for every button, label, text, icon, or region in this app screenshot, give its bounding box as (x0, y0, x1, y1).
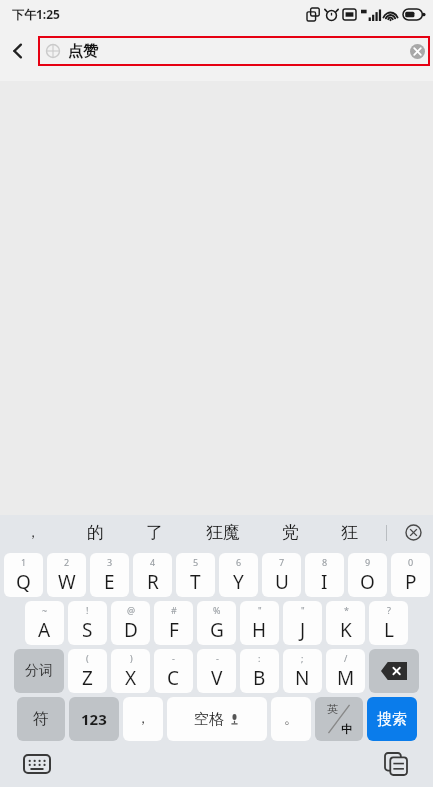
button[interactable]: - (154, 649, 193, 693)
button[interactable]: 搜索 (367, 697, 417, 741)
staticText: F (169, 617, 179, 643)
staticText: P (405, 569, 417, 595)
button[interactable]: % (197, 601, 236, 645)
button[interactable]: - (197, 649, 236, 693)
staticText: C (167, 665, 180, 691)
staticText: A (38, 617, 51, 643)
button[interactable]: Clipboard (379, 747, 413, 781)
staticText: S (82, 617, 93, 643)
staticText: - (216, 652, 219, 664)
button[interactable]: 狂 (320, 515, 379, 550)
button[interactable]: 8 (305, 553, 344, 597)
button[interactable]: 空格 (167, 697, 267, 741)
button[interactable]: : (240, 649, 279, 693)
staticText: 狂魔 (206, 522, 240, 543)
button[interactable]: 的 (66, 515, 125, 550)
staticText: K (340, 617, 352, 643)
staticText: T (190, 569, 201, 595)
staticText: 狂 (341, 522, 358, 543)
staticText: Z (82, 665, 93, 691)
button[interactable]: " (240, 601, 279, 645)
button[interactable] (369, 649, 419, 693)
staticText: 的 (87, 522, 104, 543)
button[interactable]: 6 (219, 553, 258, 597)
staticText: O (360, 569, 375, 595)
button[interactable]: 5 (176, 553, 215, 597)
staticText: 2 (64, 556, 70, 568)
button[interactable]: 分词 (14, 649, 64, 693)
staticText: 英 (327, 702, 338, 716)
staticText: ( (86, 652, 89, 664)
button[interactable]: / (326, 649, 365, 693)
button[interactable]: @ (111, 601, 150, 645)
staticText: ) (130, 652, 133, 664)
button[interactable]: 。 (271, 697, 311, 741)
button[interactable]: 符 (17, 697, 65, 741)
button[interactable]: ， (0, 515, 66, 550)
staticText: 3 (107, 556, 113, 568)
button[interactable]: ~ (25, 601, 64, 645)
button[interactable]: 了 (125, 515, 184, 550)
staticText: X (125, 665, 137, 691)
staticText: L (384, 617, 394, 643)
button[interactable]: # (154, 601, 193, 645)
button[interactable]: Clear (404, 38, 430, 64)
staticText: 下午1:25 (12, 6, 60, 22)
staticText: * (344, 604, 349, 616)
button[interactable]: 7 (262, 553, 301, 597)
staticText: 4 (150, 556, 156, 568)
staticText: N (295, 665, 310, 691)
button[interactable]: Back (0, 33, 36, 69)
button[interactable]: 党 (261, 515, 320, 550)
staticText: 5 (193, 556, 199, 568)
button[interactable]: ) (111, 649, 150, 693)
staticText: / (344, 652, 348, 664)
staticText: 符 (33, 709, 49, 729)
button[interactable]: 0 (391, 553, 430, 597)
staticText: Q (16, 569, 31, 595)
staticText: ! (86, 604, 89, 616)
staticText: 搜索 (377, 710, 407, 729)
staticText: 。 (284, 710, 298, 728)
staticText: V (211, 665, 223, 691)
staticText: # (171, 604, 177, 616)
staticText: ~ (42, 604, 48, 616)
staticText: E (104, 569, 115, 595)
button[interactable]: 2 (47, 553, 86, 597)
staticText: ， (136, 710, 150, 728)
button[interactable]: " (283, 601, 322, 645)
button[interactable]: Close candidates (393, 515, 433, 550)
button[interactable]: ? (369, 601, 408, 645)
staticText: 了 (146, 522, 163, 543)
button[interactable]: 123 (69, 697, 119, 741)
staticText: I (321, 569, 328, 595)
button[interactable]: 点赞 (38, 36, 430, 66)
button[interactable]: Switch keyboard (20, 747, 54, 781)
staticText: " (258, 604, 262, 616)
staticText: ， (26, 524, 40, 542)
staticText: ? (387, 604, 391, 616)
button[interactable]: 英 (315, 697, 363, 741)
staticText: U (275, 569, 289, 595)
button[interactable]: 4 (133, 553, 172, 597)
staticText: 7 (279, 556, 285, 568)
button[interactable]: 3 (90, 553, 129, 597)
button[interactable]: 9 (348, 553, 387, 597)
staticText: D (124, 617, 138, 643)
staticText: G (210, 617, 224, 643)
staticText: 点赞 (68, 42, 98, 61)
button[interactable]: * (326, 601, 365, 645)
button[interactable]: 狂魔 (184, 515, 261, 550)
staticText: : (258, 652, 261, 664)
button[interactable]: ; (283, 649, 322, 693)
button[interactable]: ( (68, 649, 107, 693)
button[interactable]: ， (123, 697, 163, 741)
button[interactable]: ! (68, 601, 107, 645)
staticText: 中 (341, 722, 352, 736)
button[interactable]: 1 (4, 553, 43, 597)
staticText: - (172, 652, 175, 664)
staticText: 空格 (194, 710, 224, 729)
staticText: 6 (236, 556, 242, 568)
staticText: 党 (282, 522, 299, 543)
staticText: 8 (322, 556, 328, 568)
